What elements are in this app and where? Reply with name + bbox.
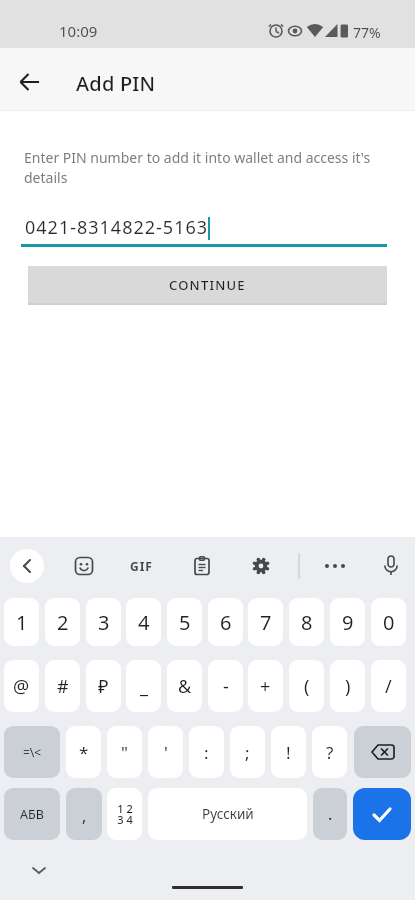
button[interactable] [353,788,411,840]
staticText: Русский [202,805,254,823]
staticText: CONTINUE [169,276,246,294]
staticText: 1 [16,609,28,636]
staticText: 77% [353,23,381,42]
staticText: 3 [98,609,110,636]
button[interactable]: 1 2 3 4 [107,788,142,840]
staticText: . [328,803,333,825]
button[interactable]: 2 [45,598,80,646]
button[interactable]: Русский [148,788,307,840]
button[interactable]: CONTINUE [28,266,387,303]
staticText: 0421-8314822-5163 [25,215,209,240]
staticText: 1 2 3 4 [117,801,133,828]
staticText: ₽ [98,674,109,699]
button[interactable]: 0 [371,598,406,646]
button[interactable] [354,726,411,778]
button[interactable]: GIF [124,556,158,576]
staticText: Add PIN [76,70,156,97]
staticText: @ [13,674,30,699]
staticText: ; [245,741,250,764]
button[interactable]: 9 [330,598,365,646]
button[interactable]: ( [289,660,324,712]
button[interactable]: 4 [126,598,161,646]
button[interactable]: ₽ [86,660,121,712]
button[interactable] [74,556,94,576]
button[interactable]: _ [126,660,161,712]
staticText: 5 [179,609,191,636]
staticText: ' [164,741,168,764]
staticText: & [178,674,192,699]
staticText: 7 [260,609,272,636]
staticText: ( [304,674,310,699]
staticText: 8 [301,609,313,636]
button[interactable] [251,556,271,576]
staticText: ! [286,741,291,764]
button[interactable]: 8 [289,598,324,646]
button[interactable] [8,60,52,104]
staticText: 2 [57,609,69,636]
button[interactable]: 6 [208,598,243,646]
button[interactable] [10,549,44,583]
button[interactable]: + [248,660,283,712]
staticText: 4 [138,609,150,636]
staticText: + [260,674,271,699]
button[interactable]: & [167,660,202,712]
button[interactable] [192,556,212,576]
staticText: ? [326,741,334,764]
button[interactable]: * [66,726,101,778]
staticText: Enter PIN number to add it into wallet a… [24,148,371,187]
staticText: - [223,674,229,699]
button[interactable]: ? [312,726,347,778]
staticText: * [79,741,89,764]
staticText: " [121,741,128,764]
button[interactable]: ' [148,726,183,778]
button[interactable]: 1 [4,598,39,646]
button[interactable]: 3 [86,598,121,646]
staticText: 9 [342,609,354,636]
staticText: 6 [220,609,232,636]
button[interactable]: ; [230,726,265,778]
button[interactable]: . [313,788,347,840]
button[interactable]: - [208,660,243,712]
button[interactable]: , [66,788,102,840]
staticText: GIF [130,558,153,574]
staticText: : [204,741,209,764]
button[interactable]: ) [330,660,365,712]
staticText: ) [345,674,351,699]
button[interactable]: # [45,660,80,712]
button[interactable]: =\< [4,726,60,778]
staticText: =\< [23,744,42,760]
button[interactable]: 7 [248,598,283,646]
button[interactable]: / [371,660,406,712]
button[interactable]: ! [271,726,306,778]
button[interactable]: " [107,726,142,778]
staticText: АБВ [20,806,44,823]
staticText: # [57,674,69,699]
button[interactable]: @ [4,660,39,712]
staticText: 10:09 [59,21,98,41]
button[interactable]: : [189,726,224,778]
button[interactable] [381,554,401,578]
button[interactable] [320,556,350,576]
staticText: / [385,674,392,699]
button[interactable]: АБВ [4,788,60,840]
staticText: 0 [383,609,395,636]
button[interactable]: 5 [167,598,202,646]
staticText: _ [140,674,148,699]
staticText: , [82,805,87,827]
